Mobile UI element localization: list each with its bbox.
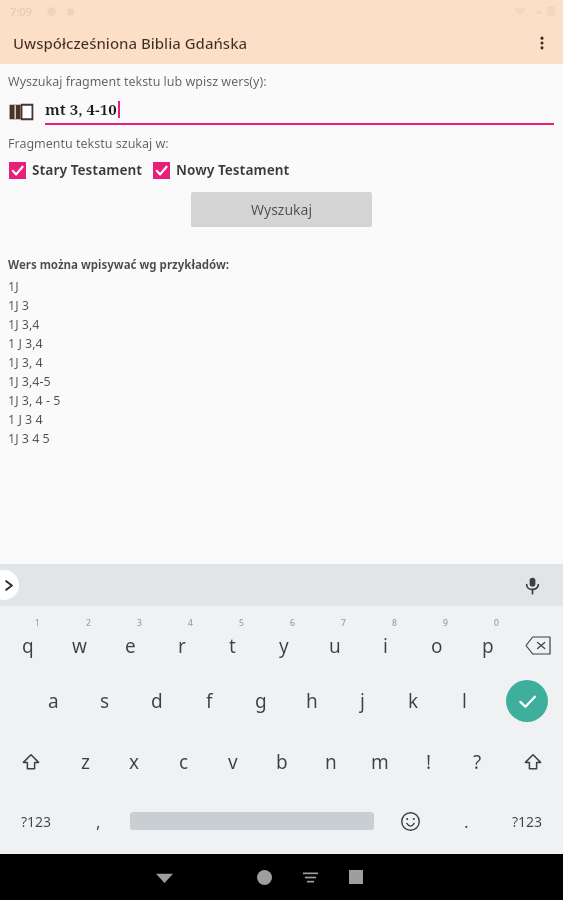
staticText: 1J xyxy=(8,278,19,295)
button[interactable]: Backspace xyxy=(513,612,563,669)
staticText: m xyxy=(371,749,389,775)
staticText: 1J 3 xyxy=(8,297,29,314)
button[interactable]: Nowy Testament xyxy=(153,159,290,181)
staticText: , xyxy=(96,810,101,833)
staticText: ? xyxy=(473,749,482,775)
button[interactable]: j xyxy=(337,669,388,732)
staticText: 9 xyxy=(443,617,448,629)
staticText: 3 xyxy=(137,617,142,629)
staticText: 1J 3,4-5 xyxy=(8,373,51,390)
button[interactable]: n xyxy=(306,732,355,792)
button[interactable]: 7 xyxy=(309,612,360,669)
staticText: v xyxy=(228,749,238,775)
button[interactable]: k xyxy=(388,669,439,732)
button[interactable]: f xyxy=(183,669,235,732)
staticText: mt 3, 4-10 xyxy=(45,99,117,119)
button[interactable]: 4 xyxy=(156,612,207,669)
staticText: 1J 3 4 5 xyxy=(8,430,50,447)
button[interactable]: Shift xyxy=(502,732,563,792)
button[interactable]: Expand toolbar xyxy=(0,570,19,600)
button[interactable]: Home xyxy=(241,854,287,900)
staticText: r xyxy=(178,633,186,659)
staticText: x xyxy=(129,749,140,775)
staticText: 5 xyxy=(239,617,244,629)
button[interactable]: h xyxy=(286,669,337,732)
button[interactable]: 0 xyxy=(462,612,513,669)
staticText: j xyxy=(360,688,365,714)
button[interactable]: l xyxy=(439,669,490,732)
button[interactable]: ! xyxy=(404,732,453,792)
button[interactable]: ? xyxy=(453,732,502,792)
button[interactable]: v xyxy=(208,732,257,792)
staticText: q xyxy=(22,633,34,659)
button[interactable]: Switch keyboard xyxy=(287,854,333,900)
button[interactable]: Space xyxy=(124,792,380,850)
staticText: Uwspółcześniona Biblia Gdańska xyxy=(13,33,248,53)
button[interactable]: ?123 xyxy=(0,792,73,850)
button[interactable]: Wyszukaj xyxy=(191,192,372,227)
button[interactable]: Shift xyxy=(0,732,61,792)
staticText: Nowy Testament xyxy=(176,161,290,179)
button[interactable]: b xyxy=(257,732,306,792)
staticText: 1J 3, 4 - 5 xyxy=(8,392,61,409)
button[interactable]: c xyxy=(159,732,208,792)
staticText: o xyxy=(431,633,443,659)
staticText: ! xyxy=(426,749,432,775)
staticText: u xyxy=(329,633,341,659)
staticText: l xyxy=(462,688,467,714)
button[interactable]: , xyxy=(73,792,124,850)
staticText: b xyxy=(276,749,288,775)
staticText: w xyxy=(72,633,87,659)
button[interactable]: Back xyxy=(125,854,203,900)
button[interactable]: 5 xyxy=(207,612,258,669)
staticText: s xyxy=(100,688,110,714)
button[interactable]: 3 xyxy=(105,612,156,669)
staticText: 1 J 3,4 xyxy=(8,335,43,352)
staticText: ?123 xyxy=(512,812,543,831)
button[interactable]: Voice input xyxy=(519,572,545,598)
staticText: i xyxy=(383,633,388,659)
staticText: c xyxy=(179,749,189,775)
staticText: 7:09 xyxy=(10,4,32,19)
staticText: g xyxy=(255,688,267,714)
staticText: y xyxy=(279,633,289,659)
button[interactable]: s xyxy=(79,669,131,732)
button[interactable]: 1 xyxy=(2,612,54,669)
staticText: ?123 xyxy=(21,812,52,831)
button[interactable]: z xyxy=(61,732,110,792)
staticText: Fragmentu tekstu szukaj w: xyxy=(8,135,169,152)
staticText: t xyxy=(229,633,236,659)
staticText: d xyxy=(151,688,163,714)
staticText: a xyxy=(48,688,59,714)
staticText: 1 xyxy=(35,617,40,629)
staticText: z xyxy=(81,749,90,775)
staticText: 2 xyxy=(86,617,91,629)
button[interactable]: Emoji xyxy=(380,792,441,850)
staticText: p xyxy=(482,633,494,659)
staticText: 1J 3, 4 xyxy=(8,354,43,371)
button[interactable]: Stary Testament xyxy=(9,159,143,181)
staticText: Wyszukaj xyxy=(251,200,313,219)
button[interactable]: g xyxy=(235,669,286,732)
button[interactable]: m xyxy=(355,732,404,792)
button[interactable]: d xyxy=(131,669,183,732)
staticText: 8 xyxy=(392,617,397,629)
button[interactable]: 2 xyxy=(54,612,105,669)
button[interactable]: . xyxy=(441,792,491,850)
staticText: e xyxy=(125,633,136,659)
button[interactable]: 8 xyxy=(360,612,411,669)
button[interactable]: 6 xyxy=(258,612,309,669)
button[interactable]: More options xyxy=(521,22,563,64)
staticText: 4 xyxy=(188,617,193,629)
staticText: f xyxy=(206,688,213,714)
staticText: 1J 3,4 xyxy=(8,316,40,333)
button[interactable]: Recent apps xyxy=(333,854,379,900)
staticText: 1 J 3 4 xyxy=(8,411,43,428)
button[interactable]: 9 xyxy=(411,612,462,669)
button[interactable]: ?123 xyxy=(491,792,563,850)
button[interactable]: Enter xyxy=(490,669,563,732)
button[interactable]: Book xyxy=(8,99,34,125)
button[interactable]: a xyxy=(27,669,79,732)
button[interactable]: x xyxy=(110,732,159,792)
staticText: k xyxy=(408,688,419,714)
